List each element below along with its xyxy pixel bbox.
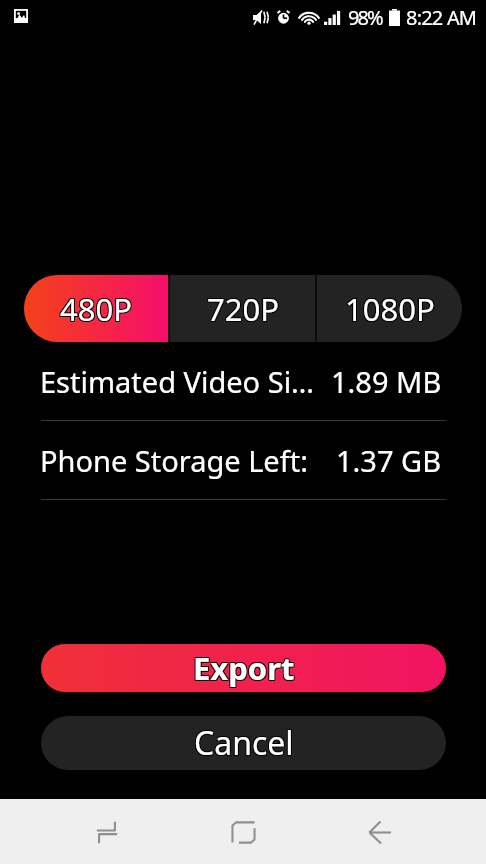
button[interactable]: Back bbox=[349, 801, 411, 863]
staticText: Export bbox=[192, 646, 294, 688]
staticText: 480P bbox=[60, 288, 132, 330]
staticText: Cancel bbox=[195, 721, 295, 765]
staticText: 480P bbox=[61, 288, 133, 330]
button[interactable]: 1080P bbox=[317, 275, 462, 342]
staticText: Cancel bbox=[193, 722, 293, 766]
staticText: Export bbox=[193, 648, 295, 690]
staticText: 480P bbox=[59, 287, 131, 329]
staticText: 1080P bbox=[346, 287, 436, 329]
staticText: 480P bbox=[60, 287, 132, 329]
staticText: 720P bbox=[208, 289, 280, 331]
staticText: 1080P bbox=[344, 289, 434, 331]
staticText: Estimated Video Size: bbox=[40, 362, 318, 401]
button[interactable]: Export bbox=[41, 644, 446, 692]
staticText: Cancel bbox=[193, 721, 293, 765]
staticText: 1080P bbox=[345, 288, 435, 330]
staticText: 720P bbox=[206, 289, 278, 331]
staticText: 480P bbox=[61, 289, 133, 331]
staticText: 720P bbox=[207, 289, 279, 331]
staticText: 480P bbox=[59, 289, 131, 331]
staticText: Phone Storage Left: bbox=[40, 441, 308, 480]
staticText: Export bbox=[193, 646, 295, 688]
staticText: 480P bbox=[61, 287, 133, 329]
staticText: Export bbox=[194, 646, 296, 688]
staticText: 720P bbox=[206, 288, 278, 330]
staticText: 480P bbox=[60, 289, 132, 331]
staticText: 1080P bbox=[345, 289, 435, 331]
button[interactable]: 480P bbox=[24, 275, 168, 342]
staticText: 1.89 MB bbox=[331, 362, 442, 401]
staticText: 720P bbox=[207, 288, 279, 330]
staticText: Cancel bbox=[193, 720, 293, 764]
staticText: Cancel bbox=[195, 722, 295, 766]
staticText: Cancel bbox=[194, 722, 294, 766]
staticText: Export bbox=[193, 647, 295, 689]
staticText: 720P bbox=[207, 287, 279, 329]
staticText: Export bbox=[194, 648, 296, 690]
button[interactable]: 720P bbox=[170, 275, 315, 342]
staticText: 720P bbox=[208, 288, 280, 330]
staticText: Export bbox=[192, 647, 294, 689]
staticText: Cancel bbox=[194, 721, 294, 765]
staticText: 480P bbox=[59, 288, 131, 330]
staticText: Cancel bbox=[195, 720, 295, 764]
button[interactable]: Recents bbox=[76, 801, 138, 863]
staticText: 720P bbox=[206, 287, 278, 329]
staticText: Export bbox=[194, 647, 296, 689]
staticText: Export bbox=[192, 648, 294, 690]
button[interactable]: Home bbox=[212, 801, 274, 863]
staticText: 1080P bbox=[346, 288, 436, 330]
staticText: 1.37 GB bbox=[336, 441, 442, 480]
staticText: 1080P bbox=[346, 289, 436, 331]
staticText: 720P bbox=[208, 287, 280, 329]
staticText: 98% bbox=[348, 4, 382, 31]
staticText: 8:22 AM bbox=[406, 4, 477, 31]
staticText: 1080P bbox=[344, 288, 434, 330]
staticText: 1080P bbox=[344, 287, 434, 329]
staticText: 1080P bbox=[345, 287, 435, 329]
button[interactable]: Cancel bbox=[41, 716, 446, 770]
staticText: Cancel bbox=[194, 720, 294, 764]
